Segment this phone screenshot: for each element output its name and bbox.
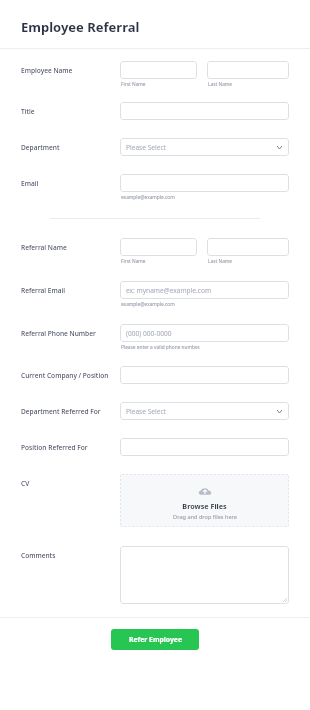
staticText: ex: myname@example.com (126, 286, 212, 295)
staticText: Please Select (126, 143, 167, 152)
button[interactable] (120, 102, 289, 120)
button[interactable] (207, 238, 289, 256)
staticText: First Name (121, 81, 146, 88)
staticText: Last Name (208, 81, 233, 88)
button[interactable] (120, 61, 197, 79)
staticText: Current Company / Position (21, 371, 109, 380)
staticText: Comments (21, 551, 56, 560)
staticText: First Name (121, 258, 146, 265)
staticText: Title (21, 107, 35, 116)
staticText: Last Name (208, 258, 233, 265)
staticText: Browse Files (182, 501, 227, 511)
button[interactable] (120, 366, 289, 384)
staticText: Employee Name (21, 66, 73, 75)
staticText: Please enter a valid phone number. (121, 344, 201, 351)
staticText: Department Referred For (21, 407, 101, 416)
staticText: Department (21, 143, 60, 152)
button[interactable]: (000) 000-0000 (120, 324, 289, 342)
button[interactable] (120, 238, 197, 256)
staticText: Employee Referral (21, 18, 140, 36)
button[interactable] (120, 546, 289, 604)
staticText: (000) 000-0000 (126, 329, 172, 338)
staticText: example@example.com (121, 301, 175, 308)
button[interactable]: Browse Files (120, 474, 289, 527)
button[interactable]: ex: myname@example.com (120, 281, 289, 299)
button[interactable] (120, 438, 289, 456)
button[interactable]: Please Select (120, 402, 289, 420)
staticText: Position Referred For (21, 443, 88, 452)
staticText: Email (21, 179, 39, 188)
staticText: Referral Phone Number (21, 329, 96, 338)
staticText: Please Select (126, 407, 167, 416)
button[interactable] (120, 174, 289, 192)
staticText: CV (21, 479, 30, 488)
staticText: example@example.com (121, 194, 175, 201)
staticText: Referral Name (21, 243, 67, 252)
button[interactable]: Please Select (120, 138, 289, 156)
staticText: Refer Employee (129, 635, 182, 644)
button[interactable]: Refer Employee (111, 629, 199, 650)
staticText: Referral Email (21, 286, 66, 295)
staticText: Drag and drop files here (173, 513, 237, 521)
button[interactable] (207, 61, 289, 79)
